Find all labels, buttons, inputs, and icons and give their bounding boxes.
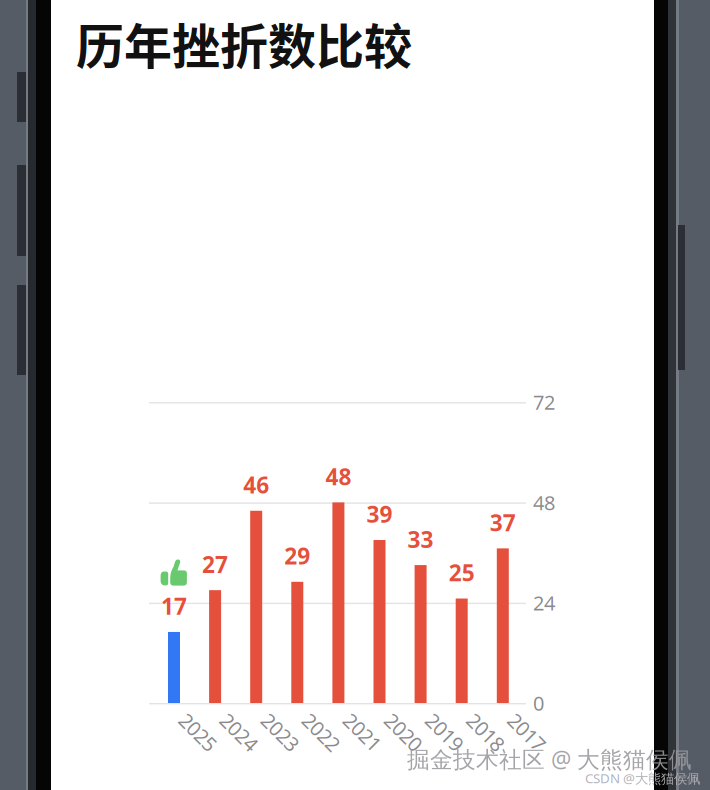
staticText: 2017: [505, 719, 549, 745]
staticText: 39: [366, 499, 392, 529]
staticText: 2020: [381, 719, 425, 745]
staticText: 46: [243, 470, 269, 500]
staticText: 历年挫折数比较: [76, 8, 412, 78]
staticText: 2023: [258, 719, 302, 745]
staticText: 掘金技术社区 @ 大熊猫侯佩: [407, 744, 692, 774]
staticText: 27: [202, 549, 228, 579]
button[interactable]: 46: [236, 456, 277, 703]
staticText: CSDN @大熊猫侯佩: [585, 769, 700, 787]
staticText: 33: [408, 524, 434, 554]
button[interactable]: 25: [441, 543, 482, 703]
staticText: 2022: [299, 719, 343, 745]
staticText: 2025: [176, 719, 220, 745]
button[interactable]: 37: [482, 493, 523, 703]
staticText: 0: [533, 690, 544, 716]
button[interactable]: 33: [400, 510, 441, 703]
staticText: 48: [325, 461, 351, 491]
staticText: 37: [490, 507, 516, 537]
staticText: 25: [449, 557, 475, 588]
staticText: 48: [533, 489, 555, 516]
button[interactable]: 27: [194, 535, 236, 703]
button[interactable]: 48: [318, 447, 359, 703]
staticText: 2024: [217, 719, 261, 745]
staticText: 2019: [423, 719, 467, 745]
button[interactable]: 29: [277, 527, 318, 703]
staticText: 17: [161, 591, 187, 621]
staticText: 2018: [464, 719, 508, 745]
staticText: 29: [284, 541, 310, 571]
button[interactable]: 39: [359, 485, 400, 703]
staticText: 2021: [340, 719, 384, 745]
staticText: 24: [533, 589, 555, 616]
button[interactable]: 17: [153, 577, 194, 703]
staticText: 72: [533, 389, 555, 415]
